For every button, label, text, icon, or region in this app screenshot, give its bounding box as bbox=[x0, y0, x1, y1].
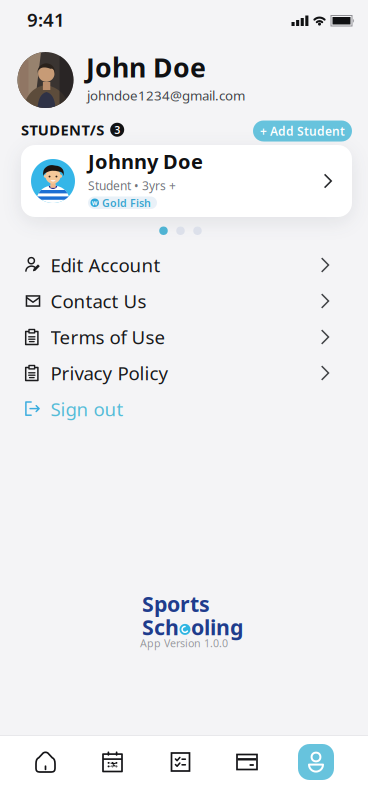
staticText: 3 bbox=[114, 123, 120, 137]
staticText: Johnny Doe bbox=[88, 148, 203, 175]
staticText: oling bbox=[191, 613, 243, 641]
button[interactable]: Calendar bbox=[92, 742, 132, 782]
staticText: Edit Account bbox=[50, 253, 160, 277]
button[interactable]: Home bbox=[25, 742, 65, 782]
button[interactable]: + Add Student bbox=[253, 120, 352, 141]
button[interactable]: Privacy Policy bbox=[0, 355, 368, 391]
button[interactable]: Payments bbox=[227, 742, 267, 782]
staticText: Gold Fish bbox=[102, 196, 151, 210]
button[interactable]: Profile bbox=[298, 744, 334, 780]
staticText: STUDENT/S bbox=[21, 120, 104, 139]
staticText: 9:41 bbox=[27, 7, 65, 32]
staticText: + Add Student bbox=[260, 123, 345, 139]
button[interactable]: Bookings bbox=[160, 742, 200, 782]
button[interactable]: Sign out bbox=[0, 391, 368, 427]
staticText: w bbox=[92, 198, 98, 207]
staticText: Privacy Policy bbox=[50, 361, 168, 385]
staticText: John Doe bbox=[86, 49, 206, 85]
staticText: Sports bbox=[142, 589, 210, 618]
button[interactable]: Johnny Doe bbox=[21, 145, 352, 217]
button[interactable]: Contact Us bbox=[0, 283, 368, 319]
staticText: johndoe1234@gmail.com bbox=[87, 86, 245, 104]
staticText: App Version 1.0.0 bbox=[140, 636, 228, 650]
button[interactable]: Terms of Use bbox=[0, 319, 368, 355]
staticText: Contact Us bbox=[50, 289, 146, 313]
staticText: Student • 3yrs + bbox=[88, 178, 176, 193]
staticText: Sch bbox=[142, 613, 179, 641]
button[interactable]: Edit Account bbox=[0, 247, 368, 283]
staticText: Sign out bbox=[50, 397, 123, 421]
staticText: Terms of Use bbox=[50, 325, 165, 349]
